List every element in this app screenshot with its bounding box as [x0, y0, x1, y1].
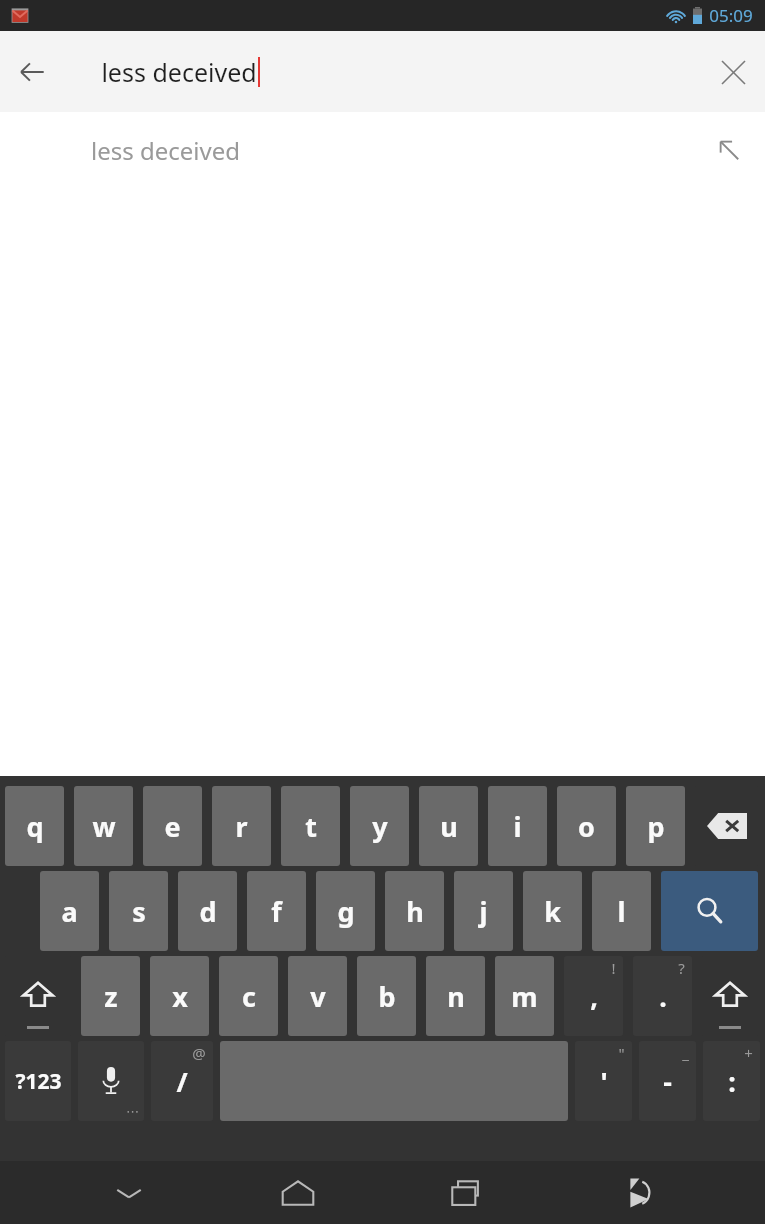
staticText: + [744, 1043, 753, 1063]
staticText: ? [678, 958, 685, 978]
button[interactable]: m [495, 956, 554, 1036]
staticText: y [372, 808, 388, 845]
button[interactable]: Clear search [701, 40, 765, 104]
staticText: i [513, 808, 522, 845]
button[interactable]: z [81, 956, 140, 1036]
button[interactable]: - [639, 1041, 696, 1121]
button[interactable]: e [143, 786, 202, 866]
button[interactable]: less deceived [0, 112, 765, 188]
button[interactable]: , [564, 956, 623, 1036]
staticText: " [618, 1043, 625, 1063]
staticText: a [61, 893, 78, 930]
button[interactable]: d [178, 871, 237, 951]
button[interactable]: w [74, 786, 133, 866]
staticText: ?123 [15, 1067, 62, 1096]
button[interactable]: ?123 [5, 1041, 71, 1121]
staticText: q [26, 808, 44, 845]
button[interactable]: / [151, 1041, 213, 1121]
staticText: u [440, 808, 458, 845]
button[interactable]: p [626, 786, 685, 866]
button[interactable]: Backspace [695, 786, 758, 866]
staticText: g [337, 893, 355, 930]
button[interactable]: j [454, 871, 513, 951]
button[interactable]: s [109, 871, 168, 951]
staticText: ' [600, 1063, 608, 1100]
button[interactable]: Hide keyboard [89, 1161, 169, 1224]
staticText: j [479, 893, 488, 930]
staticText: s [132, 893, 146, 930]
button[interactable]: q [5, 786, 64, 866]
staticText: f [271, 893, 282, 930]
button[interactable]: f [247, 871, 306, 951]
staticText: k [544, 893, 561, 930]
button[interactable]: g [316, 871, 375, 951]
button[interactable]: x [150, 956, 209, 1036]
staticText: less deceived [101, 55, 257, 89]
staticText: b [378, 978, 396, 1015]
staticText: / [176, 1063, 188, 1100]
staticText: ! [611, 958, 616, 978]
button[interactable]: y [350, 786, 409, 866]
staticText: less deceived [91, 134, 240, 167]
button[interactable]: t [281, 786, 340, 866]
button[interactable]: l [592, 871, 651, 951]
staticText: - [663, 1063, 672, 1100]
staticText: p [647, 808, 665, 845]
button[interactable]: i [488, 786, 547, 866]
button[interactable]: Insert suggestion [711, 132, 747, 168]
staticText: d [199, 893, 217, 930]
staticText: ⋯ [126, 1104, 139, 1119]
staticText: n [447, 978, 465, 1015]
button[interactable]: r [212, 786, 271, 866]
staticText: o [578, 808, 595, 845]
staticText: : [728, 1063, 736, 1100]
staticText: . [659, 978, 667, 1015]
button[interactable]: a [40, 871, 99, 951]
button[interactable]: Shift [702, 956, 758, 1036]
staticText: h [406, 893, 424, 930]
button[interactable]: c [219, 956, 278, 1036]
staticText: t [305, 808, 317, 845]
staticText: r [235, 808, 248, 845]
button[interactable]: ' [575, 1041, 632, 1121]
staticText: l [617, 893, 626, 930]
staticText: e [164, 808, 181, 845]
button[interactable]: v [288, 956, 347, 1036]
staticText: @ [192, 1043, 206, 1063]
button[interactable]: Shift [5, 956, 71, 1036]
button[interactable]: Search [661, 871, 758, 951]
button[interactable]: n [426, 956, 485, 1036]
button[interactable]: Recent apps [427, 1161, 507, 1224]
staticText: v [310, 978, 326, 1015]
button[interactable]: k [523, 871, 582, 951]
staticText: x [172, 978, 188, 1015]
button[interactable]: Home [258, 1161, 338, 1224]
staticText: m [511, 978, 538, 1015]
button[interactable]: h [385, 871, 444, 951]
staticText: 05:09 [709, 4, 753, 27]
staticText: _ [682, 1043, 689, 1063]
staticText: c [242, 978, 256, 1015]
staticText: z [104, 978, 118, 1015]
button[interactable]: o [557, 786, 616, 866]
button[interactable]: Screenshot [596, 1161, 676, 1224]
staticText: , [590, 978, 598, 1015]
button[interactable]: . [633, 956, 692, 1036]
button[interactable]: Back [0, 40, 64, 104]
button[interactable]: b [357, 956, 416, 1036]
button[interactable]: : [703, 1041, 760, 1121]
button[interactable]: Voice input [78, 1041, 144, 1121]
button[interactable]: u [419, 786, 478, 866]
staticText: w [92, 808, 116, 845]
